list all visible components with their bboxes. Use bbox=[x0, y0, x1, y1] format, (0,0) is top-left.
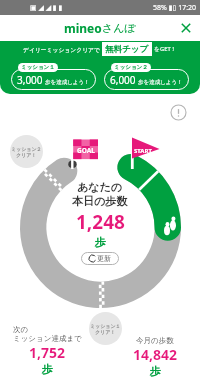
staticText: 更新 bbox=[97, 254, 111, 263]
staticText: 6,000 bbox=[110, 73, 136, 87]
button[interactable]: 更新 bbox=[81, 252, 119, 265]
staticText: 本日の歩数 bbox=[72, 194, 128, 208]
staticText: 無料チップ bbox=[105, 44, 149, 55]
staticText: mineo bbox=[64, 20, 102, 36]
staticText: クリア！ bbox=[16, 152, 37, 158]
staticText: クリア！ bbox=[95, 329, 116, 335]
staticText: ミッション２ bbox=[114, 64, 148, 71]
staticText: 3,000 bbox=[17, 73, 43, 87]
staticText: 今月の歩数 bbox=[136, 336, 174, 345]
button[interactable]: 3,000 bbox=[11, 69, 96, 90]
staticText: 歩 bbox=[150, 364, 161, 378]
staticText: 14,842 bbox=[133, 345, 178, 364]
staticText: 歩 bbox=[95, 235, 106, 249]
staticText: ミッション達成まで bbox=[13, 334, 82, 343]
staticText: ミッション１ bbox=[21, 64, 55, 71]
button[interactable]: 6,000 bbox=[104, 69, 189, 90]
staticText: 1,248 bbox=[76, 209, 125, 235]
staticText: 歩 bbox=[42, 362, 53, 376]
staticText: 次の bbox=[13, 325, 29, 334]
staticText: 歩を達成しよう！ bbox=[45, 79, 90, 86]
staticText: START bbox=[134, 147, 152, 155]
staticText: 歩を達成しよう！ bbox=[138, 79, 183, 86]
staticText: をGET！ bbox=[154, 45, 177, 53]
staticText: 58% ▮▯ 17:20 bbox=[153, 3, 197, 13]
staticText: あなたの bbox=[77, 180, 123, 194]
staticText: ミッション２ bbox=[11, 146, 42, 152]
button[interactable]: デイリーミッションクリアで bbox=[0, 41, 200, 57]
staticText: さんぽ bbox=[102, 21, 136, 35]
staticText: GOAL bbox=[77, 146, 95, 155]
button[interactable]: Close bbox=[179, 21, 193, 35]
button[interactable]: Information bbox=[170, 104, 187, 121]
staticText: デイリーミッションクリアで bbox=[23, 46, 100, 53]
staticText: ▣ ◢ ◢ ▮ ▮ bbox=[30, 3, 63, 13]
staticText: 1,752 bbox=[29, 343, 66, 362]
staticText: ミッション１ bbox=[90, 323, 121, 329]
